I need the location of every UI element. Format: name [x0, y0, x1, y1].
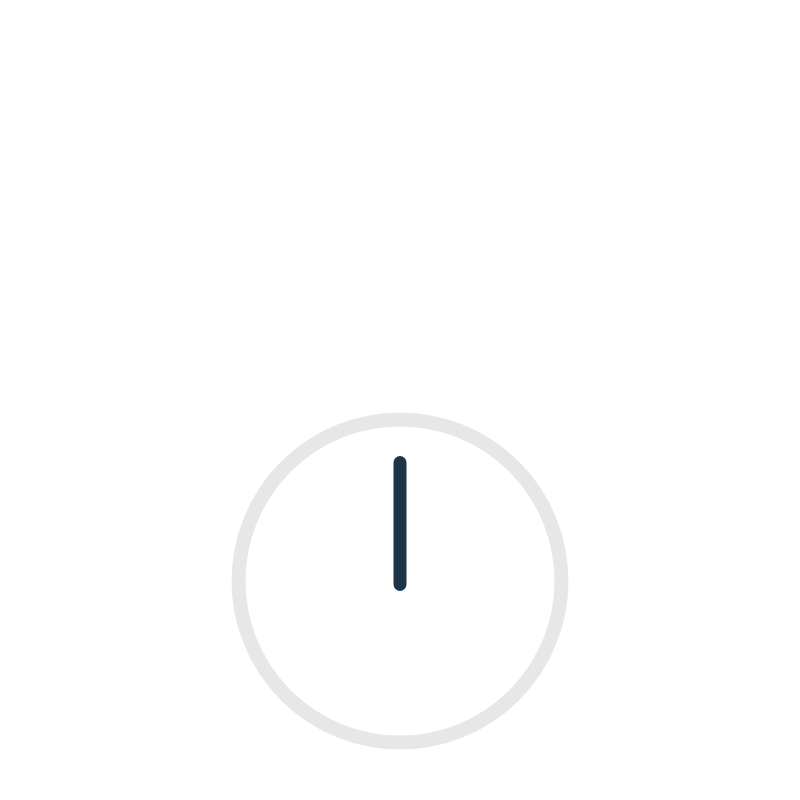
button[interactable]: Timer	[0, 0, 800, 800]
